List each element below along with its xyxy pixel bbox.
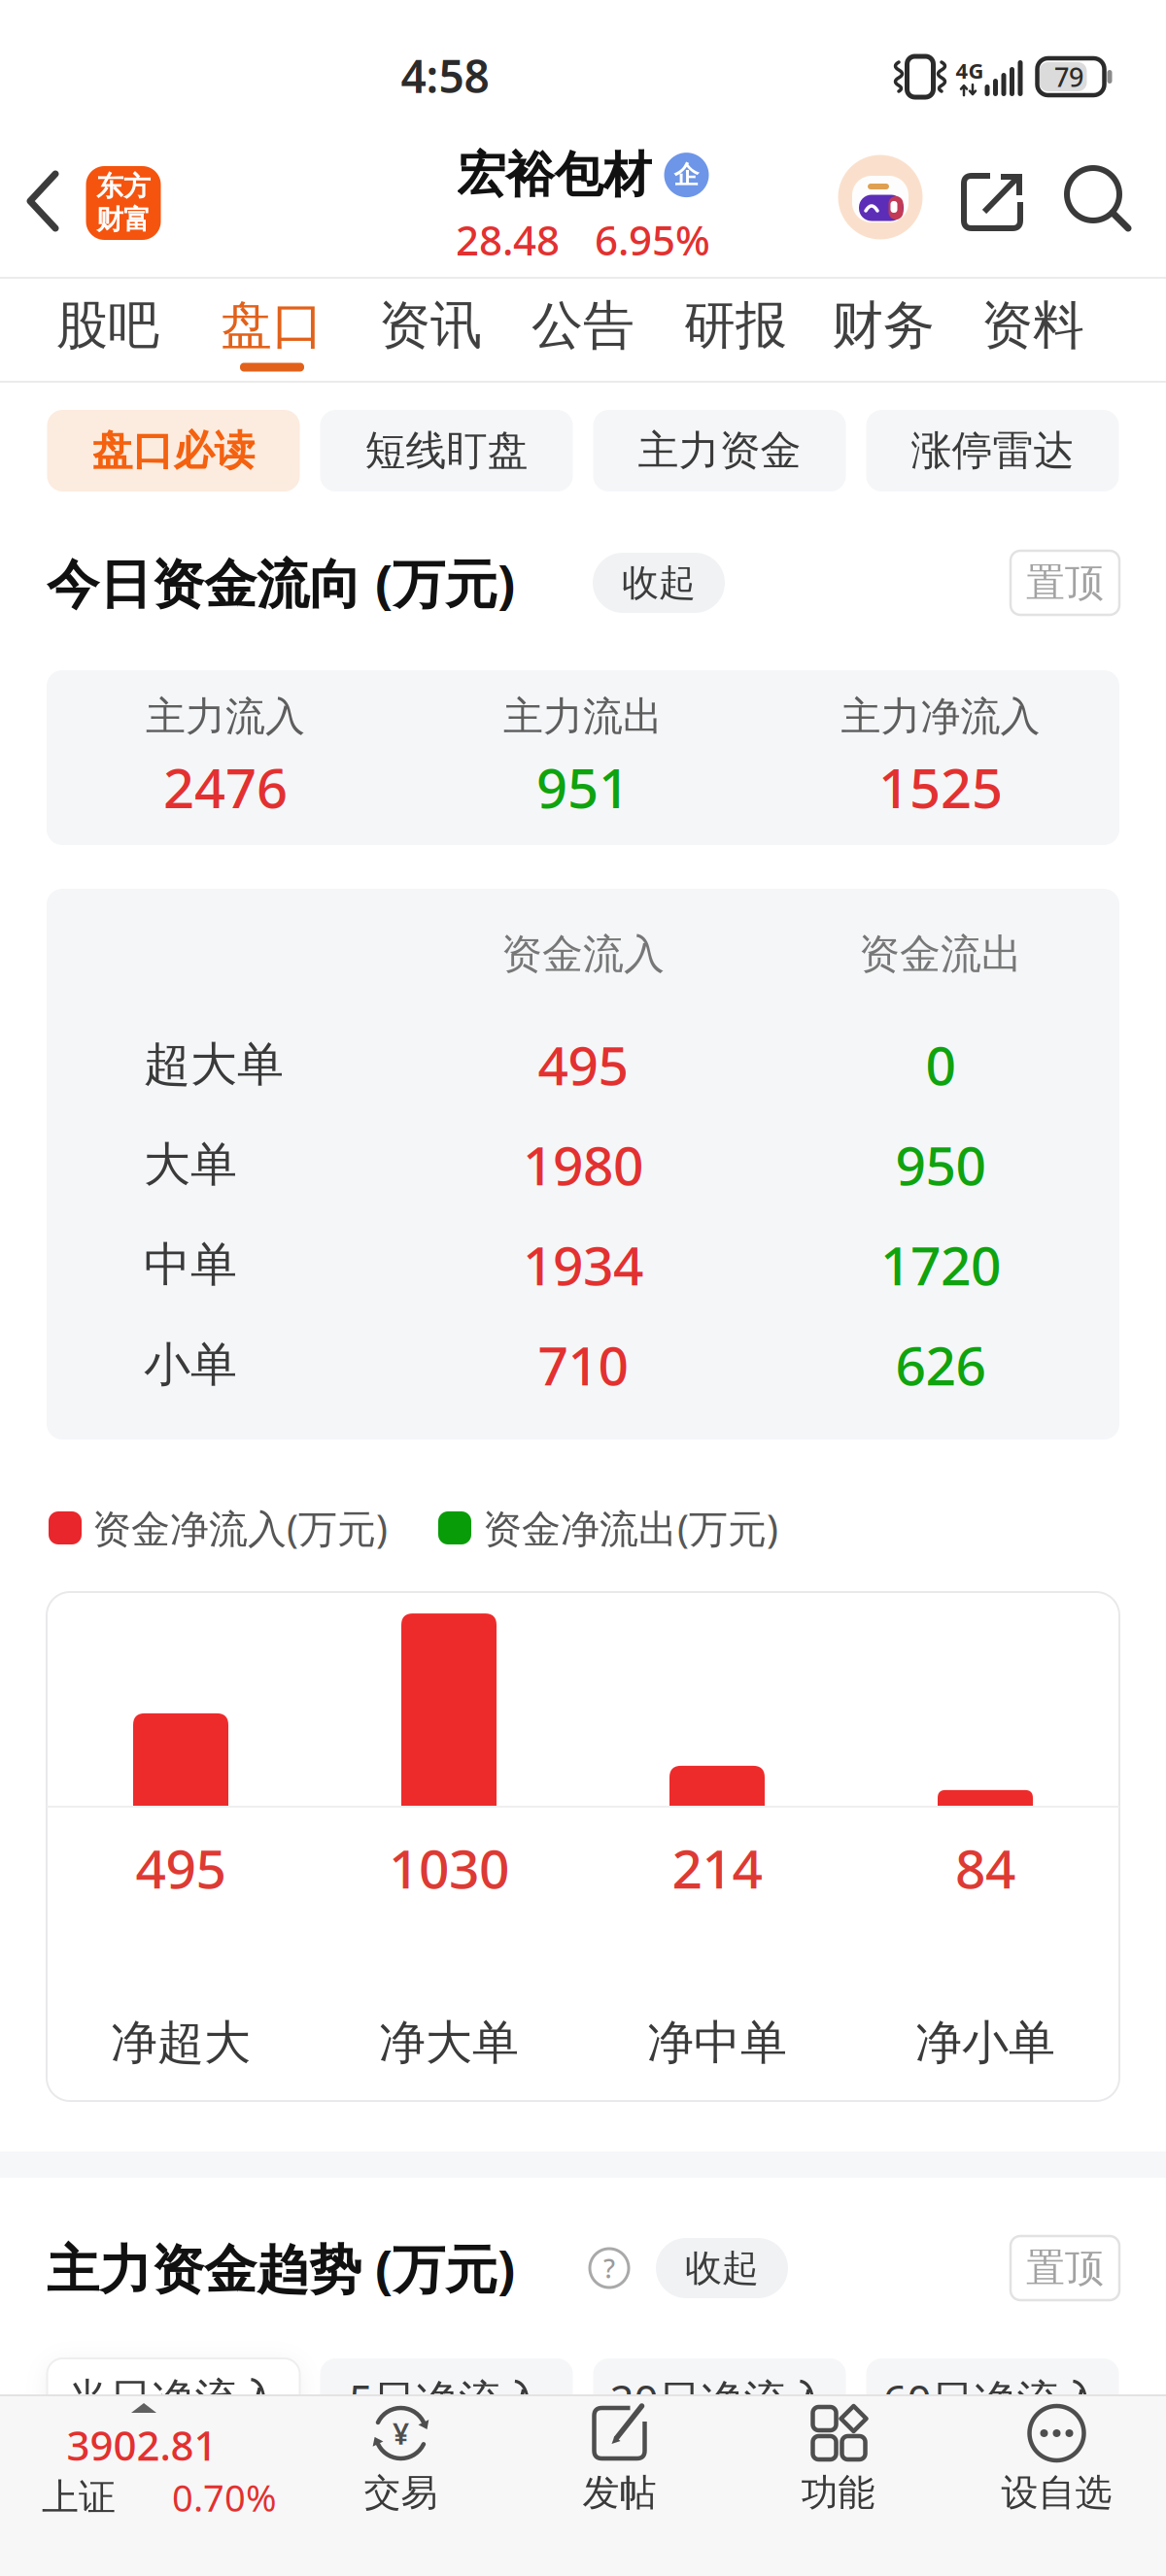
button[interactable]: 东方财富 (86, 166, 161, 240)
staticText: 超大单 (144, 1036, 284, 1093)
staticText: 1030 (389, 1832, 509, 1903)
staticText: 2476 (163, 751, 288, 823)
staticText: 626 (895, 1329, 986, 1400)
button[interactable]: 60日净流入 (866, 2358, 1119, 2440)
staticText: 资金流入 (501, 929, 665, 979)
staticText: 发帖 (583, 2470, 656, 2515)
button[interactable]: 帮助 (588, 2247, 631, 2289)
staticText: 功能 (801, 2470, 875, 2515)
staticText: 1980 (523, 1129, 643, 1200)
staticText: 中单 (144, 1236, 237, 1293)
staticText: 大单 (144, 1136, 237, 1193)
staticText: 495 (538, 1029, 628, 1100)
staticText: 今日资金流向 (万元) (47, 548, 515, 618)
staticText: 4G (956, 56, 984, 85)
staticText: 企 (674, 159, 699, 190)
button[interactable]: 盘口必读 (47, 410, 300, 491)
staticText: 上证 (42, 2475, 116, 2520)
staticText: 盘口必读 (92, 426, 255, 476)
button[interactable]: Back (26, 171, 59, 231)
staticText: 净大单 (379, 2014, 519, 2071)
button[interactable]: 资料 (981, 294, 1084, 357)
staticText: 交易 (364, 2470, 438, 2515)
staticText: 20日净流入 (610, 2371, 829, 2428)
button[interactable]: 当日净流入 (47, 2358, 300, 2440)
staticText: 当日净流入 (67, 2373, 280, 2425)
staticText: 小单 (144, 1336, 237, 1393)
button[interactable]: 研报 (684, 294, 787, 357)
button[interactable]: 置顶 (1011, 551, 1119, 615)
staticText: 股吧 (56, 294, 159, 357)
staticText: 置顶 (1026, 559, 1104, 607)
staticText: 财务 (832, 294, 935, 357)
staticText: 0.70% (172, 2473, 277, 2522)
staticText: 84 (955, 1832, 1015, 1903)
button[interactable]: Search (1067, 168, 1133, 232)
button[interactable]: 20日净流入 (593, 2358, 846, 2440)
staticText: 资金净流出(万元) (483, 1502, 778, 1554)
staticText: 主力流出 (503, 692, 663, 741)
button[interactable]: 收起 (656, 2238, 788, 2298)
staticText: 0 (926, 1029, 956, 1100)
staticText: 主力资金趋势 (万元) (47, 2233, 515, 2303)
staticText: 公告 (532, 294, 634, 357)
staticText: 资金流出 (859, 929, 1022, 979)
button[interactable]: 股吧 (56, 294, 159, 357)
button[interactable]: 收起 (593, 553, 725, 613)
staticText: ? (603, 2251, 615, 2286)
button[interactable]: 公告 (532, 294, 634, 357)
button[interactable]: 涨停雷达 (866, 410, 1119, 491)
button[interactable]: 主力资金 (593, 410, 846, 491)
button[interactable]: Share (961, 173, 1023, 231)
staticText: 710 (538, 1329, 628, 1400)
staticText: 东方 (96, 170, 151, 203)
staticText: ¥ (393, 2414, 409, 2453)
staticText: 资金净流入(万元) (92, 1502, 388, 1554)
button[interactable]: 置顶 (1011, 2236, 1119, 2300)
staticText: 置顶 (1026, 2244, 1104, 2292)
staticText: 短线盯盘 (365, 426, 528, 476)
staticText: 1720 (880, 1229, 1001, 1300)
staticText: 3902.81 (67, 2418, 217, 2472)
staticText: 1934 (523, 1229, 643, 1300)
button[interactable]: 交易 (291, 2404, 510, 2530)
staticText: 宏裕包材 (457, 145, 652, 205)
button[interactable]: 盘口 (221, 294, 324, 357)
staticText: 盘口 (221, 294, 324, 357)
staticText: 214 (672, 1832, 762, 1903)
button[interactable]: 上证指数 (0, 2404, 291, 2530)
button[interactable]: 功能 (729, 2404, 947, 2530)
staticText: 设自选 (1001, 2470, 1112, 2515)
staticText: 951 (536, 751, 630, 823)
button[interactable]: 财务 (832, 294, 935, 357)
staticText: 净小单 (915, 2014, 1055, 2071)
staticText: 60日净流入 (883, 2371, 1102, 2428)
staticText: 净超大 (111, 2014, 251, 2071)
staticText: 5日净流入 (349, 2371, 544, 2428)
staticText: 495 (136, 1832, 226, 1903)
staticText: 收起 (622, 560, 696, 606)
staticText: 6.95% (595, 213, 710, 267)
staticText: 4:58 (401, 46, 489, 105)
button[interactable]: 资讯 (379, 294, 482, 357)
button[interactable]: 发帖 (510, 2404, 729, 2530)
button[interactable]: 设自选 (947, 2404, 1166, 2530)
button[interactable]: 5日净流入 (320, 2358, 573, 2440)
staticText: 涨停雷达 (911, 426, 1074, 476)
staticText: 1525 (878, 751, 1003, 823)
staticText: 收起 (685, 2245, 759, 2291)
staticText: 主力流入 (146, 692, 305, 741)
staticText: 资料 (981, 294, 1084, 357)
button[interactable]: AI 助手 (838, 155, 923, 239)
staticText: 资讯 (379, 294, 482, 357)
staticText: 研报 (684, 294, 787, 357)
staticText: 净中单 (647, 2014, 787, 2071)
staticText: 主力资金 (638, 426, 801, 476)
staticText: 950 (895, 1129, 986, 1200)
staticText: 主力净流入 (841, 692, 1040, 741)
staticText: 79 (1054, 59, 1083, 94)
staticText: 28.48 (456, 213, 560, 267)
staticText: 财富 (96, 203, 151, 236)
button[interactable]: 短线盯盘 (320, 410, 573, 491)
